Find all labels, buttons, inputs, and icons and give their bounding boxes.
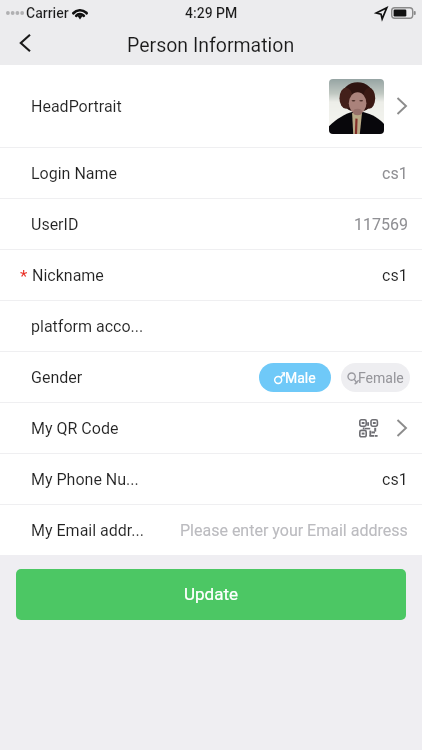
staticText: Login Name xyxy=(31,164,118,183)
button[interactable]: HeadPortrait xyxy=(0,65,422,147)
button[interactable]: Female xyxy=(341,363,410,392)
button[interactable]: Update xyxy=(16,569,406,620)
button[interactable]: My Phone Nu... xyxy=(0,454,422,504)
staticText: My QR Code xyxy=(31,419,119,438)
button[interactable]: platform acco... xyxy=(0,301,422,351)
button[interactable]: My Email addr... xyxy=(0,505,422,555)
button[interactable]: Back xyxy=(0,26,48,65)
staticText: platform acco... xyxy=(31,317,144,336)
staticText: 4:29 PM xyxy=(185,5,238,21)
staticText: Person Information xyxy=(127,34,295,57)
staticText: Nickname xyxy=(32,266,104,285)
staticText: cs1 xyxy=(382,470,408,489)
staticText: cs1 xyxy=(382,164,408,183)
staticText: Gender xyxy=(31,368,83,387)
staticText: UserID xyxy=(31,215,79,234)
button[interactable]: Male xyxy=(259,363,331,392)
staticText: * xyxy=(20,266,28,286)
staticText: Carrier xyxy=(26,5,69,21)
staticText: My Email addr... xyxy=(31,521,144,540)
button[interactable]: Login Name xyxy=(0,148,422,198)
staticText: 117569 xyxy=(354,215,408,234)
staticText: Update xyxy=(184,584,238,604)
staticText: My Phone Nu... xyxy=(31,470,139,489)
button[interactable]: * xyxy=(0,250,422,300)
staticText: cs1 xyxy=(382,266,408,285)
staticText: Male xyxy=(285,370,316,386)
button[interactable]: UserID xyxy=(0,199,422,249)
staticText: HeadPortrait xyxy=(31,97,122,116)
staticText: Female xyxy=(358,370,404,386)
staticText: Please enter your Email address xyxy=(180,521,408,540)
button[interactable]: My QR Code xyxy=(0,403,422,453)
